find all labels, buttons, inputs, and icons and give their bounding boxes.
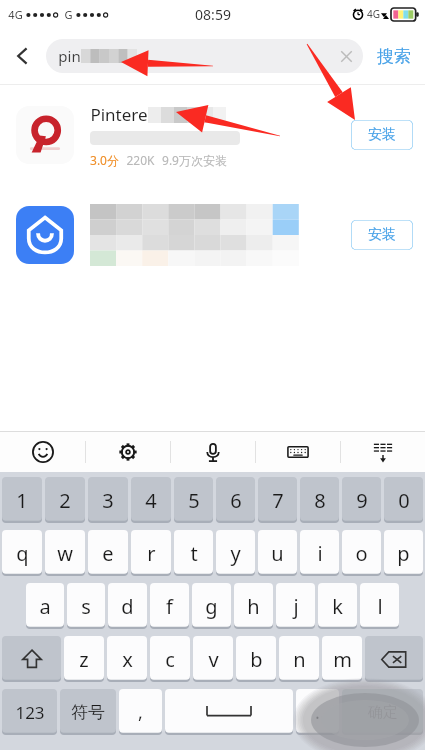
staticText: v	[208, 646, 219, 673]
button[interactable]: 安装	[351, 120, 413, 150]
button[interactable]: y	[216, 530, 255, 576]
staticText: 2	[59, 487, 71, 514]
staticText: y	[230, 540, 241, 567]
staticText: m	[333, 646, 352, 673]
staticText: 7	[272, 487, 284, 514]
button[interactable]: 2	[45, 477, 85, 523]
staticText: 4G	[367, 7, 380, 21]
button[interactable]: Space	[165, 689, 293, 735]
staticText: o	[355, 540, 368, 567]
button[interactable]: 5	[174, 477, 213, 523]
button[interactable]: pin	[46, 39, 363, 73]
staticText: 安装	[368, 226, 396, 244]
button[interactable]: Hide keyboard	[341, 432, 425, 472]
button[interactable]: i	[300, 530, 339, 576]
button[interactable]: Back	[0, 28, 46, 84]
button[interactable]: 3	[88, 477, 128, 523]
button[interactable]: Settings	[86, 432, 170, 472]
button[interactable]: 搜索	[377, 28, 411, 84]
staticText: i	[317, 540, 323, 567]
button[interactable]: n	[279, 636, 319, 682]
button[interactable]: z	[64, 636, 104, 682]
button[interactable]: w	[45, 530, 85, 576]
staticText: .	[315, 700, 320, 725]
staticText: 6	[230, 487, 242, 514]
staticText: 0	[398, 487, 410, 514]
button[interactable]: Clear	[329, 39, 363, 73]
staticText: 5	[188, 487, 200, 514]
button[interactable]: 安装	[351, 220, 413, 250]
staticText: n	[293, 646, 306, 673]
staticText: 符号	[71, 702, 105, 723]
button[interactable]: Voice input	[171, 432, 255, 472]
button[interactable]: 123	[2, 689, 57, 735]
staticText: j	[293, 593, 299, 620]
staticText: h	[247, 593, 260, 620]
button[interactable]: 0	[384, 477, 423, 523]
staticText: c	[165, 646, 175, 673]
staticText: z	[79, 646, 89, 673]
button[interactable]: u	[258, 530, 297, 576]
staticText: s	[81, 593, 91, 620]
button[interactable]: p	[384, 530, 423, 576]
staticText: 4G	[8, 7, 23, 22]
staticText: ,	[138, 700, 143, 725]
button[interactable]: e	[88, 530, 128, 576]
staticText: p	[397, 540, 410, 567]
staticText: k	[332, 593, 343, 620]
button[interactable]: q	[2, 530, 42, 576]
button[interactable]: s	[67, 583, 105, 629]
button[interactable]: Pintere	[0, 85, 425, 185]
button[interactable]: 1	[2, 477, 42, 523]
button[interactable]: d	[108, 583, 147, 629]
button[interactable]: f	[150, 583, 189, 629]
button[interactable]: 9	[342, 477, 381, 523]
button[interactable]: r	[131, 530, 171, 576]
staticText: 安装	[368, 126, 396, 144]
button[interactable]: 6	[216, 477, 255, 523]
staticText: 3.0分	[90, 152, 119, 168]
button[interactable]: Backspace	[365, 636, 423, 682]
staticText: f	[166, 593, 173, 620]
button[interactable]: o	[342, 530, 381, 576]
button[interactable]: t	[174, 530, 213, 576]
staticText: l	[377, 593, 383, 620]
button[interactable]: a	[26, 583, 64, 629]
staticText: 8	[314, 487, 326, 514]
staticText: q	[16, 540, 29, 567]
staticText: 9.9万次安装	[162, 152, 227, 168]
staticText: 3	[102, 487, 114, 514]
button[interactable]: Emoji	[0, 432, 85, 472]
staticText: G	[64, 7, 73, 22]
staticText: 220K	[126, 152, 155, 168]
button[interactable]: 4	[131, 477, 171, 523]
button[interactable]: Keyboard	[256, 432, 340, 472]
button[interactable]: l	[360, 583, 399, 629]
button[interactable]: m	[322, 636, 362, 682]
staticText: x	[122, 646, 133, 673]
button[interactable]: 8	[300, 477, 339, 523]
button[interactable]: k	[318, 583, 357, 629]
staticText: b	[250, 646, 263, 673]
button[interactable]: c	[150, 636, 190, 682]
staticText: pin	[58, 46, 81, 66]
button[interactable]: .	[296, 689, 339, 735]
button[interactable]: Shift	[2, 636, 61, 682]
button[interactable]: h	[234, 583, 273, 629]
button[interactable]: b	[236, 636, 276, 682]
button[interactable]: g	[192, 583, 231, 629]
staticText: 搜索	[377, 46, 411, 67]
button[interactable]: x	[107, 636, 147, 682]
button[interactable]: 符号	[60, 689, 116, 735]
button[interactable]: v	[193, 636, 233, 682]
button[interactable]: 安装	[0, 185, 425, 285]
button[interactable]: Enter	[342, 689, 423, 735]
staticText: 确定	[368, 703, 398, 722]
button[interactable]: 7	[258, 477, 297, 523]
button[interactable]: ,	[119, 689, 162, 735]
staticText: w	[57, 540, 73, 567]
button[interactable]: j	[276, 583, 315, 629]
staticText: t	[190, 540, 198, 567]
staticText: 9	[356, 487, 368, 514]
staticText: 123	[15, 701, 45, 724]
